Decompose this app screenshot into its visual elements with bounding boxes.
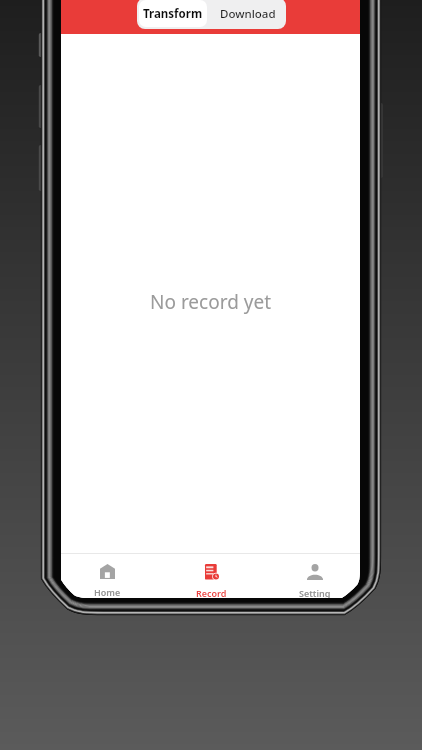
button[interactable]: Record [176, 554, 246, 598]
button[interactable]: Download [209, 0, 286, 29]
staticText: Record [196, 587, 227, 598]
staticText: Download [220, 6, 276, 22]
staticText: No record yet [150, 289, 272, 315]
button[interactable]: Transform [139, 0, 207, 27]
button[interactable]: Home [72, 554, 142, 598]
staticText: Home [94, 586, 121, 598]
staticText: Transform [143, 6, 203, 22]
staticText: Setting [299, 587, 331, 598]
button[interactable]: Setting [280, 554, 350, 598]
